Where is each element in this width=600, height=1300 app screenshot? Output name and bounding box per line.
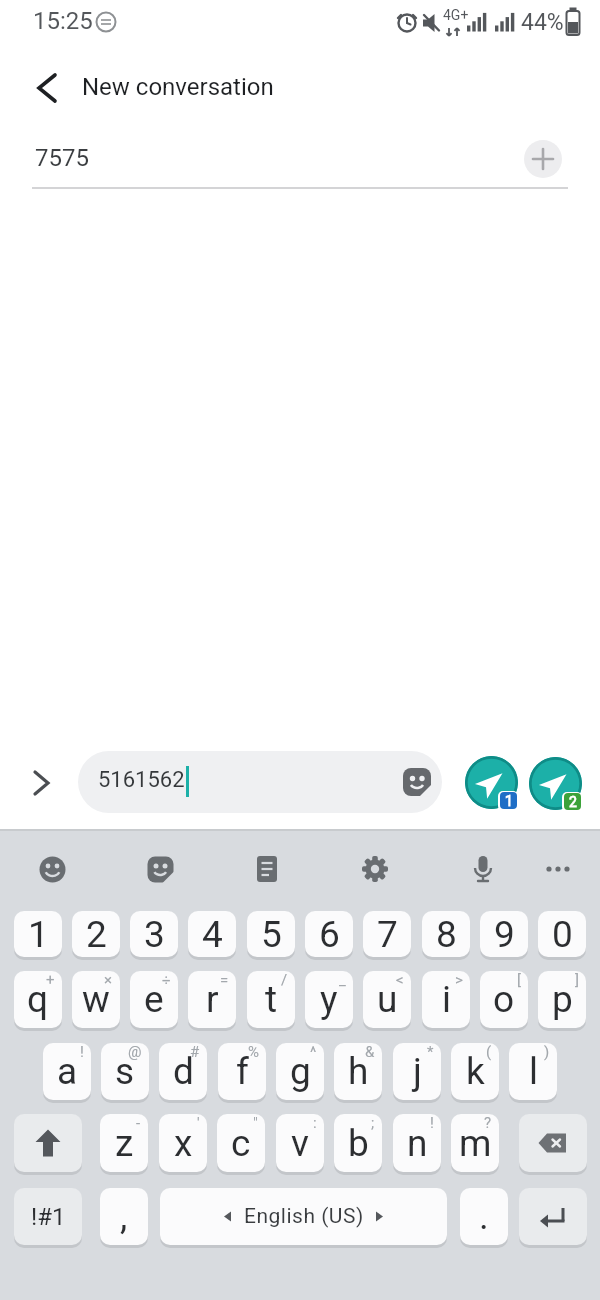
- button[interactable]: !#1: [14, 1188, 82, 1245]
- button[interactable]: g: [276, 1043, 324, 1100]
- button[interactable]: [30, 847, 74, 891]
- button[interactable]: 6: [305, 911, 353, 957]
- button[interactable]: b: [334, 1114, 382, 1172]
- staticText: ': [197, 1114, 200, 1132]
- button[interactable]: 9: [480, 911, 528, 957]
- button[interactable]: h: [334, 1043, 382, 1100]
- button[interactable]: o: [480, 971, 528, 1028]
- button[interactable]: 8: [422, 911, 470, 957]
- staticText: .: [479, 1195, 489, 1238]
- staticText: i: [442, 978, 451, 1021]
- staticText: m: [459, 1122, 492, 1165]
- button[interactable]: [519, 1114, 587, 1172]
- staticText: 8: [436, 913, 457, 956]
- staticText: ^: [310, 1043, 317, 1061]
- staticText: English (US): [244, 1204, 364, 1229]
- staticText: b: [348, 1122, 369, 1165]
- staticText: n: [407, 1122, 428, 1165]
- staticText: d: [173, 1050, 194, 1093]
- button[interactable]: 3: [130, 911, 178, 957]
- button[interactable]: e: [130, 971, 178, 1028]
- button[interactable]: u: [363, 971, 411, 1028]
- button[interactable]: [22, 764, 60, 802]
- button[interactable]: 7: [363, 911, 411, 957]
- staticText: h: [348, 1050, 369, 1093]
- staticText: o: [493, 978, 515, 1021]
- staticText: ×: [104, 971, 113, 989]
- staticText: =: [220, 971, 229, 989]
- staticText: (: [486, 1043, 492, 1061]
- button[interactable]: .: [460, 1188, 508, 1245]
- staticText: a: [57, 1050, 78, 1093]
- staticText: !: [430, 1114, 434, 1132]
- button[interactable]: [245, 847, 289, 891]
- button[interactable]: 0: [538, 911, 586, 957]
- staticText: 0: [552, 913, 573, 956]
- button[interactable]: n: [393, 1114, 441, 1172]
- staticText: w: [82, 978, 110, 1021]
- staticText: 5: [261, 913, 282, 956]
- button[interactable]: k: [451, 1043, 499, 1100]
- staticText: 15:25: [33, 7, 93, 35]
- button[interactable]: [138, 847, 182, 891]
- button[interactable]: English (US): [160, 1188, 447, 1245]
- staticText: k: [466, 1050, 485, 1093]
- staticText: /: [281, 971, 288, 989]
- button[interactable]: [536, 847, 580, 891]
- button[interactable]: [387, 752, 442, 812]
- staticText: ?: [484, 1114, 492, 1132]
- staticText: #: [190, 1043, 200, 1061]
- staticText: p: [552, 978, 573, 1021]
- staticText: j: [413, 1050, 422, 1093]
- button[interactable]: [353, 847, 397, 891]
- button[interactable]: [26, 66, 70, 110]
- staticText: &: [365, 1043, 375, 1061]
- button[interactable]: s: [101, 1043, 149, 1100]
- button[interactable]: [519, 1188, 587, 1245]
- button[interactable]: m: [451, 1114, 499, 1172]
- staticText: x: [174, 1122, 193, 1165]
- staticText: t: [265, 978, 278, 1021]
- button[interactable]: c: [217, 1114, 265, 1172]
- staticText: ): [544, 1043, 550, 1061]
- button[interactable]: w: [72, 971, 120, 1028]
- button[interactable]: j: [393, 1043, 441, 1100]
- button[interactable]: v: [276, 1114, 324, 1172]
- button[interactable]: 7575: [30, 128, 490, 186]
- button[interactable]: [14, 1114, 82, 1172]
- button[interactable]: r: [188, 971, 236, 1028]
- staticText: v: [291, 1122, 309, 1165]
- button[interactable]: [461, 847, 505, 891]
- staticText: c: [231, 1122, 251, 1165]
- staticText: [: [517, 971, 521, 989]
- button[interactable]: 1: [14, 911, 62, 957]
- staticText: ]: [575, 971, 579, 989]
- button[interactable]: ,: [100, 1188, 148, 1245]
- button[interactable]: q: [14, 971, 62, 1028]
- button[interactable]: i: [422, 971, 470, 1028]
- button[interactable]: 5: [247, 911, 295, 957]
- button[interactable]: t: [247, 971, 295, 1028]
- staticText: 1: [28, 913, 49, 956]
- button[interactable]: z: [100, 1114, 148, 1172]
- staticText: y: [320, 978, 338, 1021]
- staticText: ÷: [162, 971, 171, 989]
- button[interactable]: [524, 140, 562, 178]
- button[interactable]: f: [218, 1043, 266, 1100]
- button[interactable]: p: [538, 971, 586, 1028]
- button[interactable]: [529, 757, 582, 810]
- staticText: ;: [371, 1114, 375, 1132]
- button[interactable]: l: [509, 1043, 557, 1100]
- button[interactable]: 4: [188, 911, 236, 957]
- button[interactable]: y: [305, 971, 353, 1028]
- button[interactable]: x: [159, 1114, 207, 1172]
- button[interactable]: a: [43, 1043, 91, 1100]
- button[interactable]: d: [159, 1043, 207, 1100]
- button[interactable]: 5161562: [78, 751, 442, 813]
- button[interactable]: 2: [72, 911, 120, 957]
- staticText: s: [115, 1050, 135, 1093]
- staticText: r: [206, 978, 219, 1021]
- button[interactable]: [465, 756, 518, 809]
- staticText: q: [27, 978, 49, 1021]
- staticText: e: [144, 978, 164, 1021]
